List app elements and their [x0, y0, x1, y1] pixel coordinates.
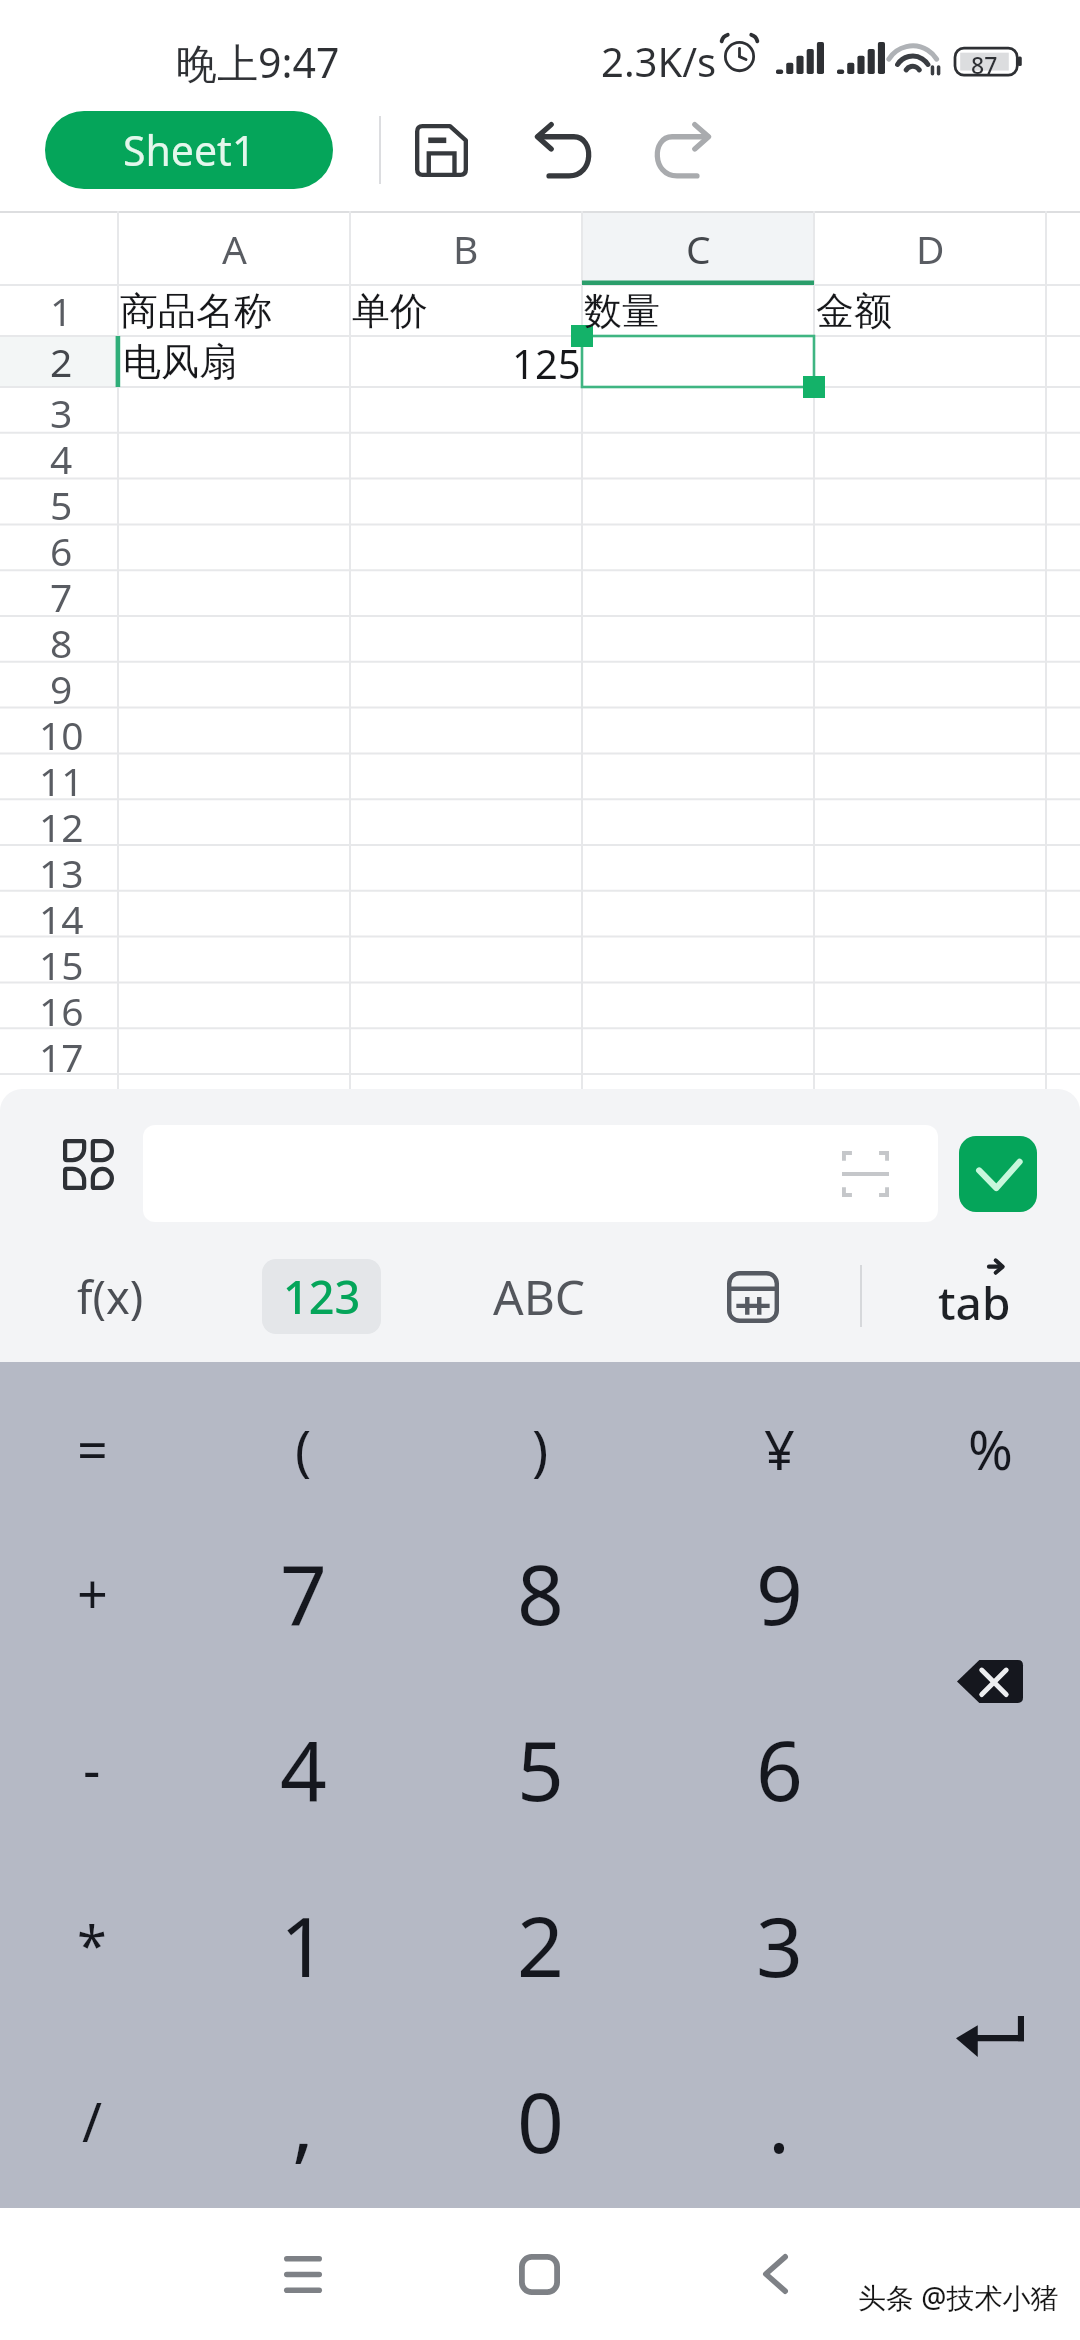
staticText: 9 [756, 1537, 803, 1649]
staticText: ABC [493, 1264, 586, 1329]
staticText: 14 [39, 892, 84, 938]
button[interactable]: More functions [38, 1124, 138, 1204]
staticText: 15 [39, 938, 84, 984]
staticText: 5 [517, 1713, 564, 1825]
button[interactable]: 6 [674, 1687, 884, 1851]
staticText: 16 [39, 984, 84, 1030]
staticText: 13 [39, 846, 84, 892]
staticText: 晚上9:47 [176, 34, 340, 90]
button[interactable]: Confirm [959, 1136, 1037, 1212]
staticText: 电风扇 [123, 338, 237, 386]
staticText: A [222, 222, 247, 275]
staticText: 1 [50, 284, 73, 335]
staticText: 0 [517, 2065, 564, 2177]
button[interactable]: * [0, 1863, 197, 2027]
staticText: = [77, 1412, 108, 1486]
button[interactable] [143, 1125, 938, 1222]
staticText: 18 [39, 1076, 84, 1122]
button[interactable]: , [198, 2039, 408, 2203]
button[interactable]: 3 [674, 1863, 884, 2027]
staticText: 17 [39, 1030, 84, 1076]
button[interactable]: Undo [526, 114, 598, 186]
staticText: 1 [280, 1889, 327, 2001]
staticText: 4 [50, 432, 73, 478]
staticText: 金额 [816, 287, 892, 335]
staticText: C [686, 222, 711, 275]
button[interactable]: 8 [435, 1511, 645, 1675]
staticText: 头条 @技术小猪 [858, 2278, 1059, 2316]
staticText: 11 [39, 754, 84, 800]
staticText: 数量 [584, 287, 660, 335]
staticText: D [916, 222, 945, 275]
button[interactable]: Enter [885, 1952, 1080, 2116]
staticText: - [83, 1732, 101, 1806]
staticText: 123 [283, 1266, 361, 1327]
button[interactable]: - [0, 1687, 197, 1851]
staticText: ( [295, 1412, 312, 1486]
staticText: f(x) [77, 1266, 144, 1327]
staticText: 2 [517, 1889, 564, 2001]
button[interactable]: % [885, 1367, 1080, 1531]
staticText: 2 [50, 335, 73, 386]
staticText: 87 [971, 49, 998, 80]
button[interactable]: Sheet1 [45, 111, 333, 189]
button[interactable]: ABC [478, 1259, 600, 1334]
staticText: 8 [50, 616, 73, 662]
staticText: 10 [39, 708, 84, 754]
button[interactable]: = [0, 1367, 197, 1531]
staticText: 单价 [352, 287, 428, 335]
button[interactable]: 2 [435, 1863, 645, 2027]
button[interactable]: Back [715, 2214, 835, 2334]
staticText: / [82, 2084, 103, 2158]
staticText: , [292, 2065, 314, 2177]
staticText: * [77, 1908, 107, 1982]
button[interactable]: 5 [435, 1687, 645, 1851]
button[interactable]: Backspace [885, 1599, 1080, 1763]
staticText: 3 [50, 386, 73, 432]
staticText: 9 [50, 662, 73, 708]
button[interactable]: ) [435, 1367, 645, 1531]
staticText: 5 [50, 478, 73, 524]
staticText: B [453, 222, 479, 275]
staticText: 3 [756, 1889, 803, 2001]
button[interactable]: + [0, 1511, 197, 1675]
staticText: Sheet1 [123, 122, 256, 178]
staticText: 12 [39, 800, 84, 846]
staticText: 4 [280, 1713, 327, 1825]
staticText: tab [938, 1271, 1011, 1334]
staticText: 6 [756, 1713, 803, 1825]
staticText: 8 [517, 1537, 564, 1649]
button[interactable]: Save [405, 114, 477, 186]
staticText: 商品名称 [120, 287, 272, 335]
button[interactable]: Redo [648, 114, 720, 186]
button[interactable]: Insert cells [713, 1259, 793, 1334]
staticText: 125 [512, 336, 581, 387]
button[interactable]: 9 [674, 1511, 884, 1675]
button[interactable]: Home [479, 2214, 599, 2334]
button[interactable]: Recents [243, 2214, 363, 2334]
button[interactable]: ¥ [674, 1367, 884, 1531]
staticText: ¥ [764, 1412, 795, 1486]
staticText: 6 [50, 524, 73, 570]
staticText: . [768, 2065, 790, 2177]
button[interactable]: 0 [435, 2039, 645, 2203]
staticText: 7 [280, 1537, 327, 1649]
staticText: % [968, 1412, 1013, 1486]
button[interactable]: / [0, 2039, 197, 2203]
staticText: 2.3K/s [601, 34, 717, 88]
staticText: ) [532, 1412, 549, 1486]
button[interactable]: 4 [198, 1687, 408, 1851]
staticText: 7 [50, 570, 73, 616]
staticText: + [77, 1556, 108, 1630]
button[interactable]: 123 [262, 1259, 381, 1334]
button[interactable]: ( [198, 1367, 408, 1531]
button[interactable]: 1 [198, 1863, 408, 2027]
button[interactable]: f(x) [56, 1259, 164, 1334]
button[interactable]: . [674, 2039, 884, 2203]
button[interactable]: tab [910, 1249, 1040, 1341]
button[interactable]: 7 [198, 1511, 408, 1675]
